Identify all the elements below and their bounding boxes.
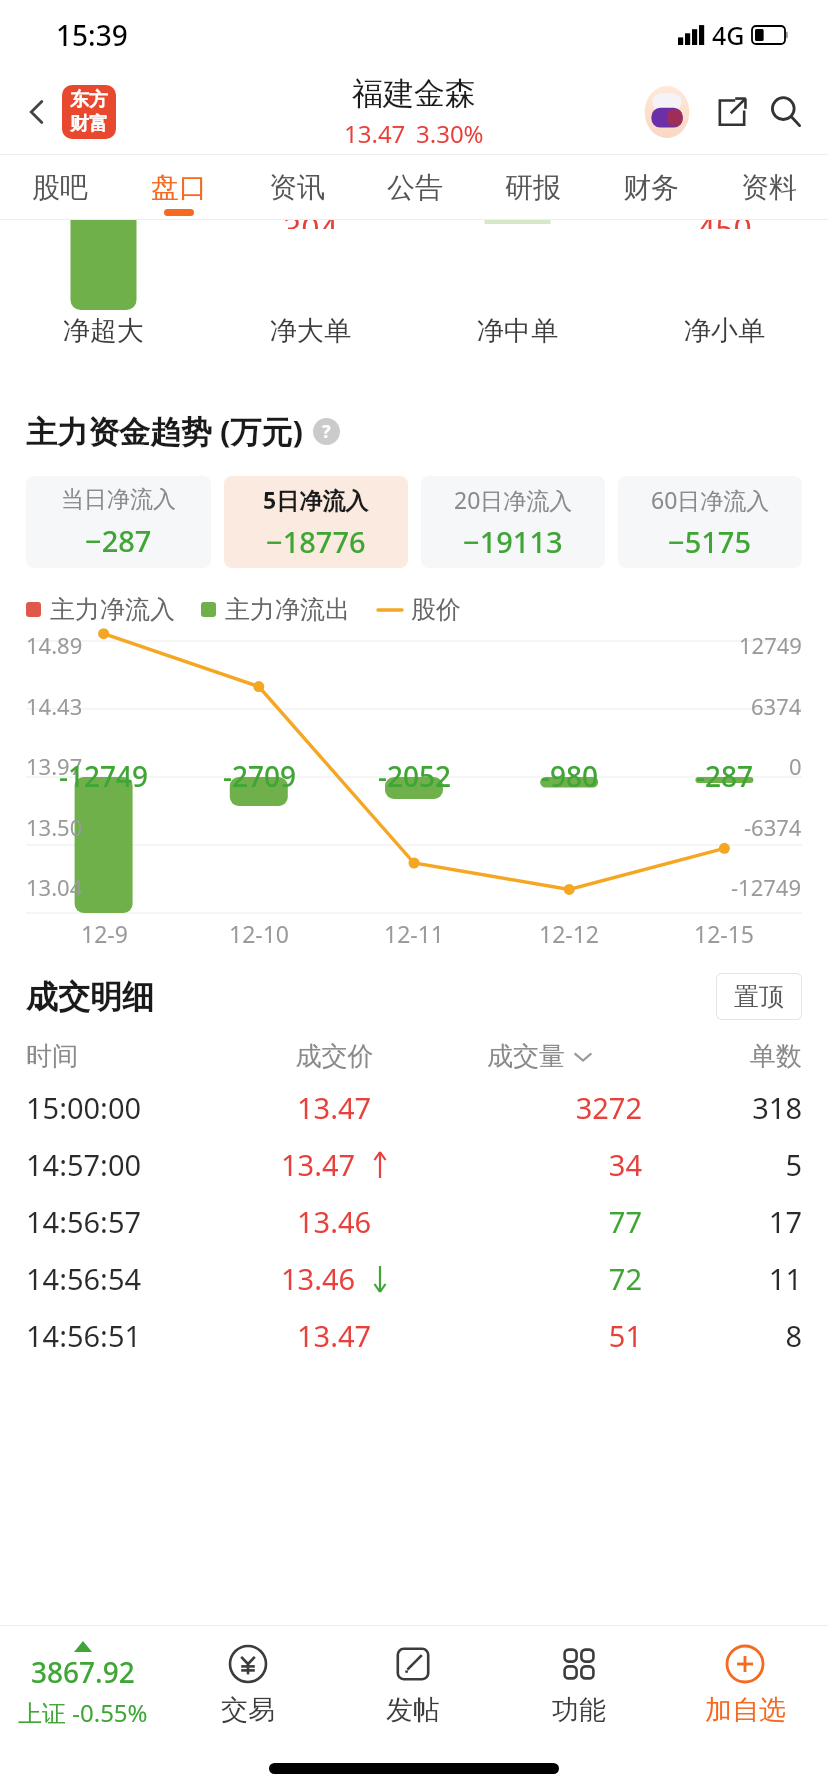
button[interactable]: Search — [762, 88, 810, 136]
staticText: 13.47 — [297, 1316, 372, 1355]
staticText: 12749 — [739, 630, 802, 660]
staticText: 净大单 — [270, 314, 351, 348]
staticText: 12-10 — [229, 918, 290, 949]
staticText: 6374 — [751, 691, 802, 721]
button[interactable]: 置顶 — [716, 973, 802, 1020]
button[interactable]: 15:00:00 — [0, 1079, 828, 1136]
staticText: 8 — [642, 1316, 802, 1355]
staticText: 318 — [642, 1088, 802, 1127]
button[interactable]: 盘口 — [119, 155, 238, 219]
staticText: 净小单 — [684, 314, 765, 348]
button[interactable]: 5日净流入 — [224, 476, 408, 568]
staticText: 5 — [642, 1145, 802, 1184]
staticText: 盘口 — [151, 170, 207, 205]
staticText: 财务 — [623, 170, 679, 205]
staticText: 14.89 — [26, 630, 83, 660]
staticText: 资料 — [741, 170, 797, 205]
staticText: -12749 — [59, 757, 149, 795]
button[interactable]: 14:56:57 — [0, 1193, 828, 1250]
staticText: 单数 — [642, 1040, 802, 1073]
staticText: 财富 — [70, 112, 108, 136]
staticText: 3272 — [437, 1088, 642, 1127]
button[interactable]: 研报 — [474, 155, 592, 219]
staticText: −19113 — [463, 522, 563, 561]
staticText: 主力资金趋势 (万元) — [26, 410, 304, 452]
staticText: 15:39 — [56, 16, 128, 54]
staticText: 4G — [712, 18, 745, 52]
staticText: 0 — [789, 751, 802, 781]
button[interactable]: 股吧 — [0, 155, 119, 219]
button[interactable]: 60日净流入 — [618, 476, 802, 568]
staticText: 72 — [437, 1259, 642, 1298]
staticText: −18776 — [266, 522, 366, 561]
staticText: 13.46 — [297, 1202, 372, 1241]
staticText: 14:56:51 — [26, 1316, 232, 1355]
staticText: 置顶 — [734, 981, 784, 1012]
button[interactable]: 14:56:54 — [0, 1250, 828, 1307]
staticText: 77 — [437, 1202, 642, 1241]
button[interactable]: 当日净流入 — [26, 476, 211, 568]
staticText: 研报 — [505, 170, 561, 205]
staticText: 5日净流入 — [263, 484, 369, 515]
button[interactable]: 交易 — [165, 1626, 330, 1744]
button[interactable]: 资料 — [710, 155, 828, 219]
button[interactable]: Back — [14, 89, 60, 135]
staticText: -2052 — [378, 757, 452, 795]
staticText: 51 — [437, 1316, 642, 1355]
staticText: 时间 — [26, 1040, 232, 1073]
staticText: 12-12 — [539, 918, 600, 949]
staticText: 净超大 — [63, 314, 144, 348]
staticText: -980 — [541, 757, 599, 795]
staticText: 12-11 — [384, 918, 445, 949]
staticText: 东方 — [70, 88, 108, 112]
button[interactable]: AI assistant — [638, 83, 696, 141]
staticText: 20日净流入 — [454, 484, 573, 515]
staticText: -12749 — [731, 872, 802, 902]
staticText: -2709 — [223, 757, 297, 795]
button[interactable]: 资讯 — [238, 155, 356, 219]
staticText: 13.47 — [344, 117, 406, 150]
staticText: 上证 -0.55% — [18, 1696, 148, 1729]
staticText: 13.97 — [26, 751, 83, 781]
staticText: -287 — [696, 757, 754, 795]
button[interactable]: 东方 — [62, 85, 116, 139]
staticText: 60日净流入 — [651, 484, 770, 515]
button[interactable]: 14:57:00 — [0, 1136, 828, 1193]
staticText: 14:57:00 — [26, 1145, 232, 1184]
staticText: 3.30% — [416, 117, 484, 150]
staticText: 304 — [283, 220, 338, 229]
staticText: 发帖 — [386, 1693, 440, 1727]
staticText: 13.04 — [26, 872, 83, 902]
staticText: 14:56:54 — [26, 1259, 232, 1298]
staticText: 交易 — [221, 1693, 275, 1727]
staticText: 13.50 — [26, 812, 83, 842]
staticText: 11 — [642, 1259, 802, 1298]
staticText: 3867.92 — [31, 1653, 135, 1691]
staticText: 450 — [697, 220, 752, 229]
button[interactable]: 14:56:51 — [0, 1307, 828, 1364]
staticText: 12-9 — [81, 918, 128, 949]
staticText: 净中单 — [477, 314, 558, 348]
staticText: 成交明细 — [26, 977, 154, 1017]
staticText: 12-15 — [694, 918, 755, 949]
button[interactable]: Share — [708, 88, 756, 136]
staticText: 13.46 — [281, 1259, 356, 1298]
button[interactable]: 公告 — [356, 155, 474, 219]
button[interactable]: 财务 — [592, 155, 710, 219]
button[interactable]: 20日净流入 — [421, 476, 605, 568]
button[interactable]: 发帖 — [330, 1626, 496, 1744]
button[interactable]: 3867.92 — [0, 1626, 165, 1744]
staticText: 加自选 — [705, 1693, 786, 1727]
staticText: 当日净流入 — [61, 485, 176, 514]
staticText: 成交量 — [487, 1040, 565, 1073]
button[interactable]: Help — [313, 418, 340, 445]
staticText: 资讯 — [269, 170, 325, 205]
staticText: 14:56:57 — [26, 1202, 232, 1241]
button[interactable]: 加自选 — [662, 1626, 828, 1744]
staticText: 福建金森 — [352, 74, 476, 113]
staticText: 13.47 — [281, 1145, 356, 1184]
button[interactable]: 功能 — [496, 1626, 662, 1744]
staticText: 14.43 — [26, 691, 83, 721]
staticText: 股价 — [411, 594, 461, 625]
staticText: 15:00:00 — [26, 1088, 232, 1127]
